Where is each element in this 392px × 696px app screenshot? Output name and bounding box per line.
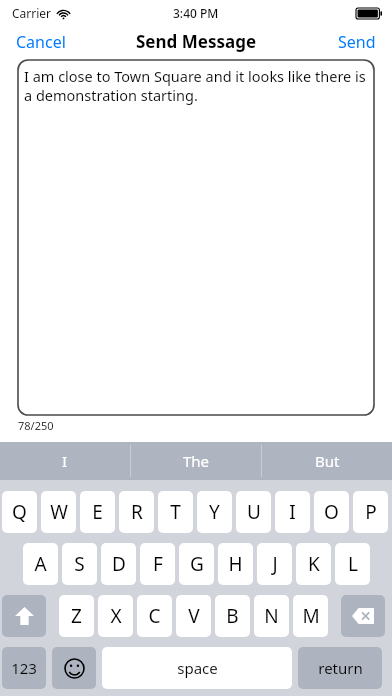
staticText: P [365,499,377,525]
button[interactable]: H [218,543,253,585]
staticText: I [289,499,296,525]
button[interactable]: Y [197,491,232,533]
staticText: S [74,551,85,577]
staticText: 123 [11,658,37,678]
button[interactable]: I am close to Town Square and it looks l… [18,60,374,415]
staticText: F [153,551,163,577]
button[interactable]: S [62,543,97,585]
staticText: H [228,551,243,577]
button[interactable]: B [215,595,250,637]
staticText: Carrier [12,5,52,21]
staticText: O [324,499,339,525]
button[interactable]: V [176,595,211,637]
staticText: Q [12,499,27,525]
button[interactable]: R [119,491,154,533]
staticText: V [188,603,200,629]
staticText: K [308,551,320,577]
button[interactable]: I [0,442,130,480]
staticText: G [190,551,204,577]
staticText: Send Message [136,30,257,53]
button[interactable]: Backspace [341,595,385,637]
staticText: I [62,451,68,471]
button[interactable]: space [102,647,292,689]
button[interactable]: C [137,595,172,637]
staticText: Z [71,603,82,629]
button[interactable]: Shift [2,595,46,637]
button[interactable]: Send [322,27,392,57]
staticText: D [112,551,126,577]
staticText: X [110,603,122,629]
button[interactable]: T [158,491,193,533]
button[interactable]: The [131,442,261,480]
staticText: C [148,603,161,629]
staticText: A [34,551,47,577]
button[interactable]: M [293,595,328,637]
button[interactable]: Emoji [52,647,96,689]
staticText: I am close to Town Square and it looks l… [24,66,366,105]
staticText: U [247,499,261,525]
staticText: E [92,499,103,525]
staticText: W [50,499,68,525]
staticText: B [226,603,239,629]
button[interactable]: But [262,442,392,480]
staticText: return [318,658,363,678]
button[interactable]: X [98,595,133,637]
staticText: M [302,603,320,629]
staticText: L [348,551,358,577]
button[interactable]: return [298,647,382,689]
button[interactable]: A [23,543,58,585]
button[interactable]: 123 [2,647,46,689]
staticText: J [272,551,278,577]
button[interactable]: P [353,491,388,533]
staticText: R [131,499,143,525]
staticText: Send [338,31,376,53]
staticText: The [183,451,210,471]
button[interactable]: N [254,595,289,637]
button[interactable]: L [335,543,370,585]
staticText: T [170,499,181,525]
button[interactable]: E [80,491,115,533]
button[interactable]: Z [59,595,94,637]
staticText: Cancel [16,31,66,53]
button[interactable]: K [296,543,331,585]
button[interactable]: F [140,543,175,585]
button[interactable]: U [236,491,271,533]
button[interactable]: I [275,491,310,533]
staticText: 3:40 PM [173,5,219,21]
button[interactable]: D [101,543,136,585]
staticText: But [315,451,340,471]
button[interactable]: J [257,543,292,585]
button[interactable]: Q [2,491,37,533]
staticText: space [177,658,218,678]
button[interactable]: O [314,491,349,533]
button[interactable]: G [179,543,214,585]
button[interactable]: W [41,491,76,533]
staticText: Y [209,499,220,525]
staticText: N [264,603,279,629]
staticText: 78/250 [18,418,54,433]
button[interactable]: Cancel [0,27,82,57]
